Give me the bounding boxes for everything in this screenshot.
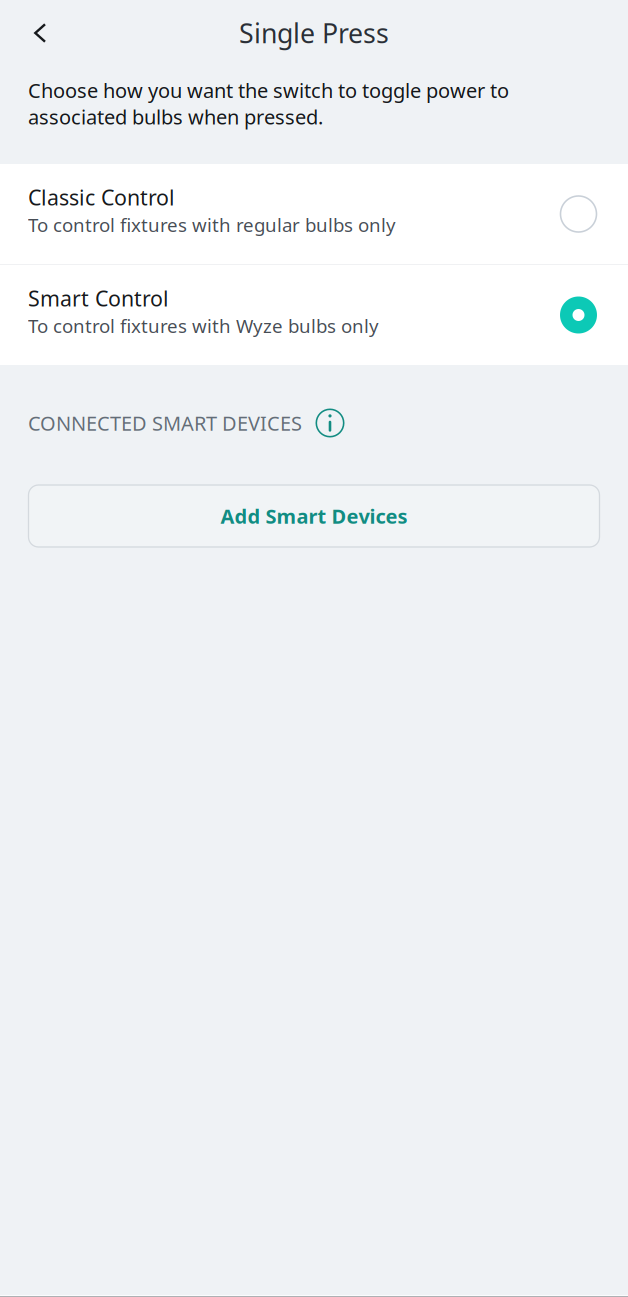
staticText: Choose how you want the switch to toggle… bbox=[28, 77, 509, 104]
staticText: Smart Control bbox=[28, 284, 169, 312]
button[interactable]: Classic Control bbox=[0, 164, 628, 264]
staticText: To control fixtures with Wyze bulbs only bbox=[28, 313, 379, 338]
staticText: CONNECTED SMART DEVICES bbox=[28, 410, 302, 436]
button[interactable]: Back bbox=[12, 5, 68, 61]
button[interactable]: Add Smart Devices bbox=[28, 485, 599, 547]
staticText: Single Press bbox=[239, 15, 389, 51]
staticText: Classic Control bbox=[28, 183, 175, 211]
staticText: Add Smart Devices bbox=[220, 503, 407, 529]
button[interactable]: About connected smart devices bbox=[316, 409, 344, 437]
staticText: To control fixtures with regular bulbs o… bbox=[28, 212, 396, 237]
staticText: associated bulbs when pressed. bbox=[28, 104, 323, 130]
button[interactable]: Smart Control bbox=[0, 265, 628, 365]
